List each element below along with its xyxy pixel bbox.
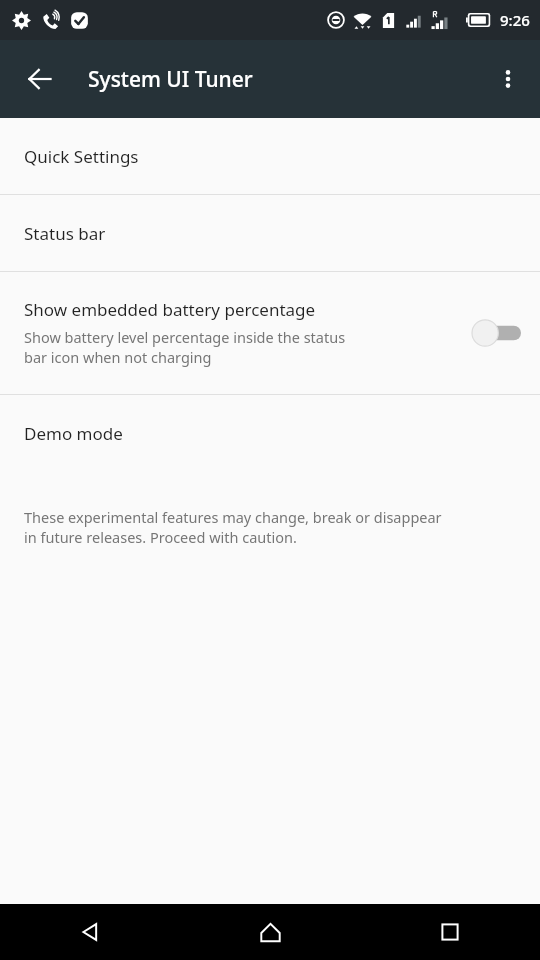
staticText: These experimental features may change, … [24,507,442,548]
button[interactable]: Show embedded battery percentage [0,272,540,394]
button[interactable]: Back [0,904,180,960]
staticText: Status bar [24,222,106,245]
staticText: 9:26 [500,10,530,30]
button[interactable]: More options [484,55,532,103]
button[interactable]: Demo mode [0,395,540,471]
button[interactable]: Status bar [0,195,540,271]
staticText: Quick Settings [24,145,139,168]
staticText: Show battery level percentage inside the… [24,327,346,368]
staticText: Demo mode [24,422,123,445]
button[interactable]: Home [180,904,360,960]
button[interactable]: Show embedded battery percentage toggle [468,313,524,353]
button[interactable]: Quick Settings [0,118,540,194]
staticText: System UI Tuner [88,65,253,94]
staticText: Show embedded battery percentage [24,298,316,321]
button[interactable]: Recent apps [360,904,540,960]
button[interactable]: Back [16,55,64,103]
